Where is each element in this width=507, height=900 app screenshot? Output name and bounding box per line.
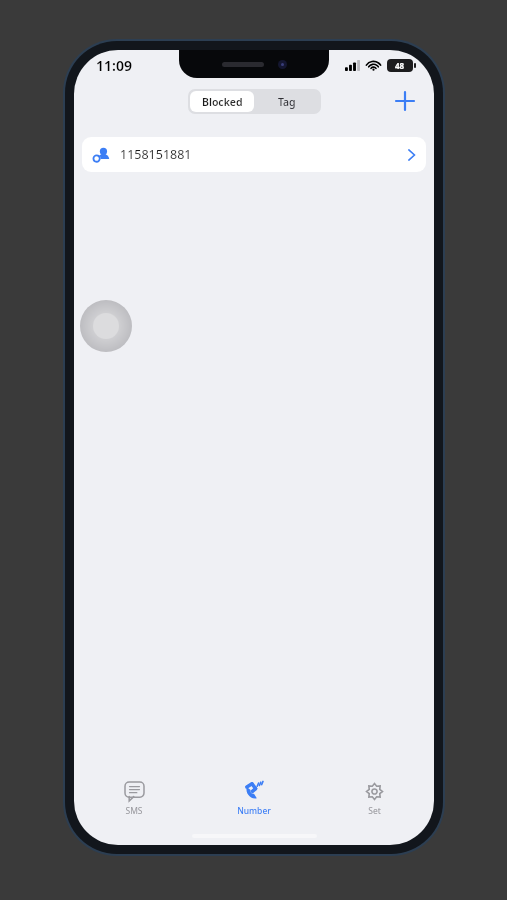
staticText: 1158151881	[120, 146, 192, 163]
staticText: Tag	[278, 95, 296, 109]
staticText: Blocked	[202, 95, 243, 109]
button[interactable]: Blocked	[190, 91, 254, 112]
staticText: 11:09	[96, 56, 132, 75]
button[interactable]: Set	[314, 771, 434, 827]
button[interactable]: 1158151881	[82, 137, 426, 172]
button[interactable]: Assistive touch	[80, 300, 132, 352]
staticText: Number	[237, 805, 271, 817]
staticText: 48	[395, 60, 405, 71]
button[interactable]: Add	[388, 84, 422, 118]
button[interactable]: Tag	[254, 91, 319, 112]
staticText: Set	[368, 805, 381, 817]
button[interactable]: Number	[194, 771, 314, 827]
staticText: SMS	[125, 805, 143, 817]
button[interactable]: SMS	[74, 771, 194, 827]
